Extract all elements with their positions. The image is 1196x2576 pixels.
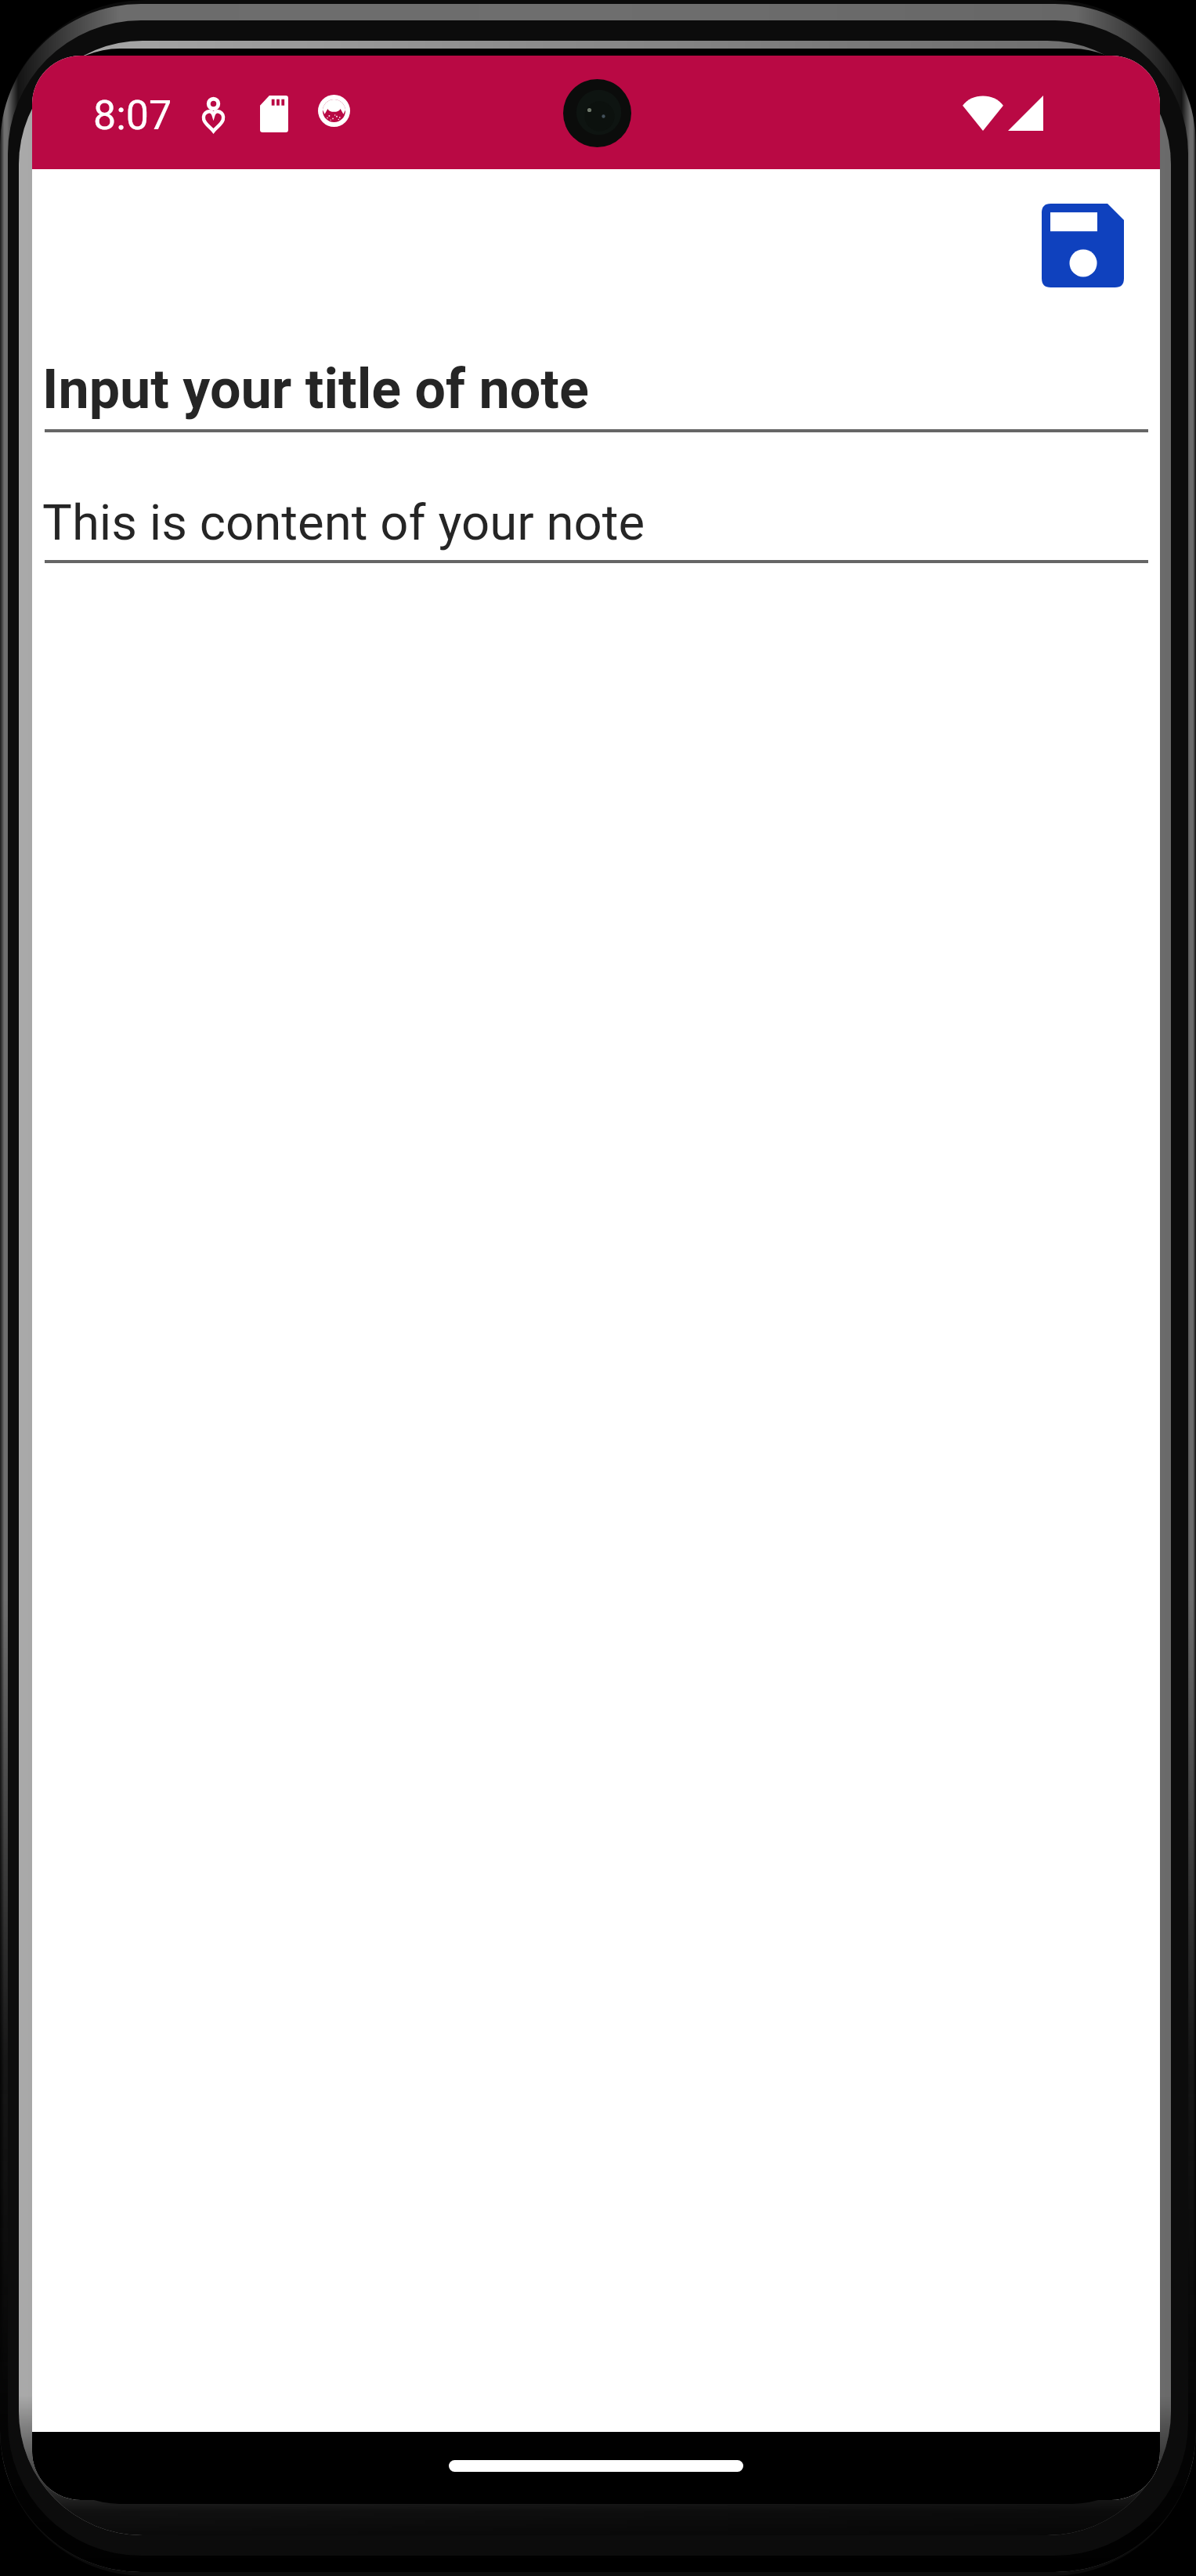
staticText: This is content of your note (42, 493, 645, 551)
button[interactable]: Input your title of note (42, 338, 1160, 440)
button[interactable]: Save note (1023, 186, 1142, 305)
button[interactable]: This is content of your note (42, 471, 1160, 573)
staticText: 8:07 (93, 92, 172, 139)
staticText: Input your title of note (42, 357, 589, 421)
